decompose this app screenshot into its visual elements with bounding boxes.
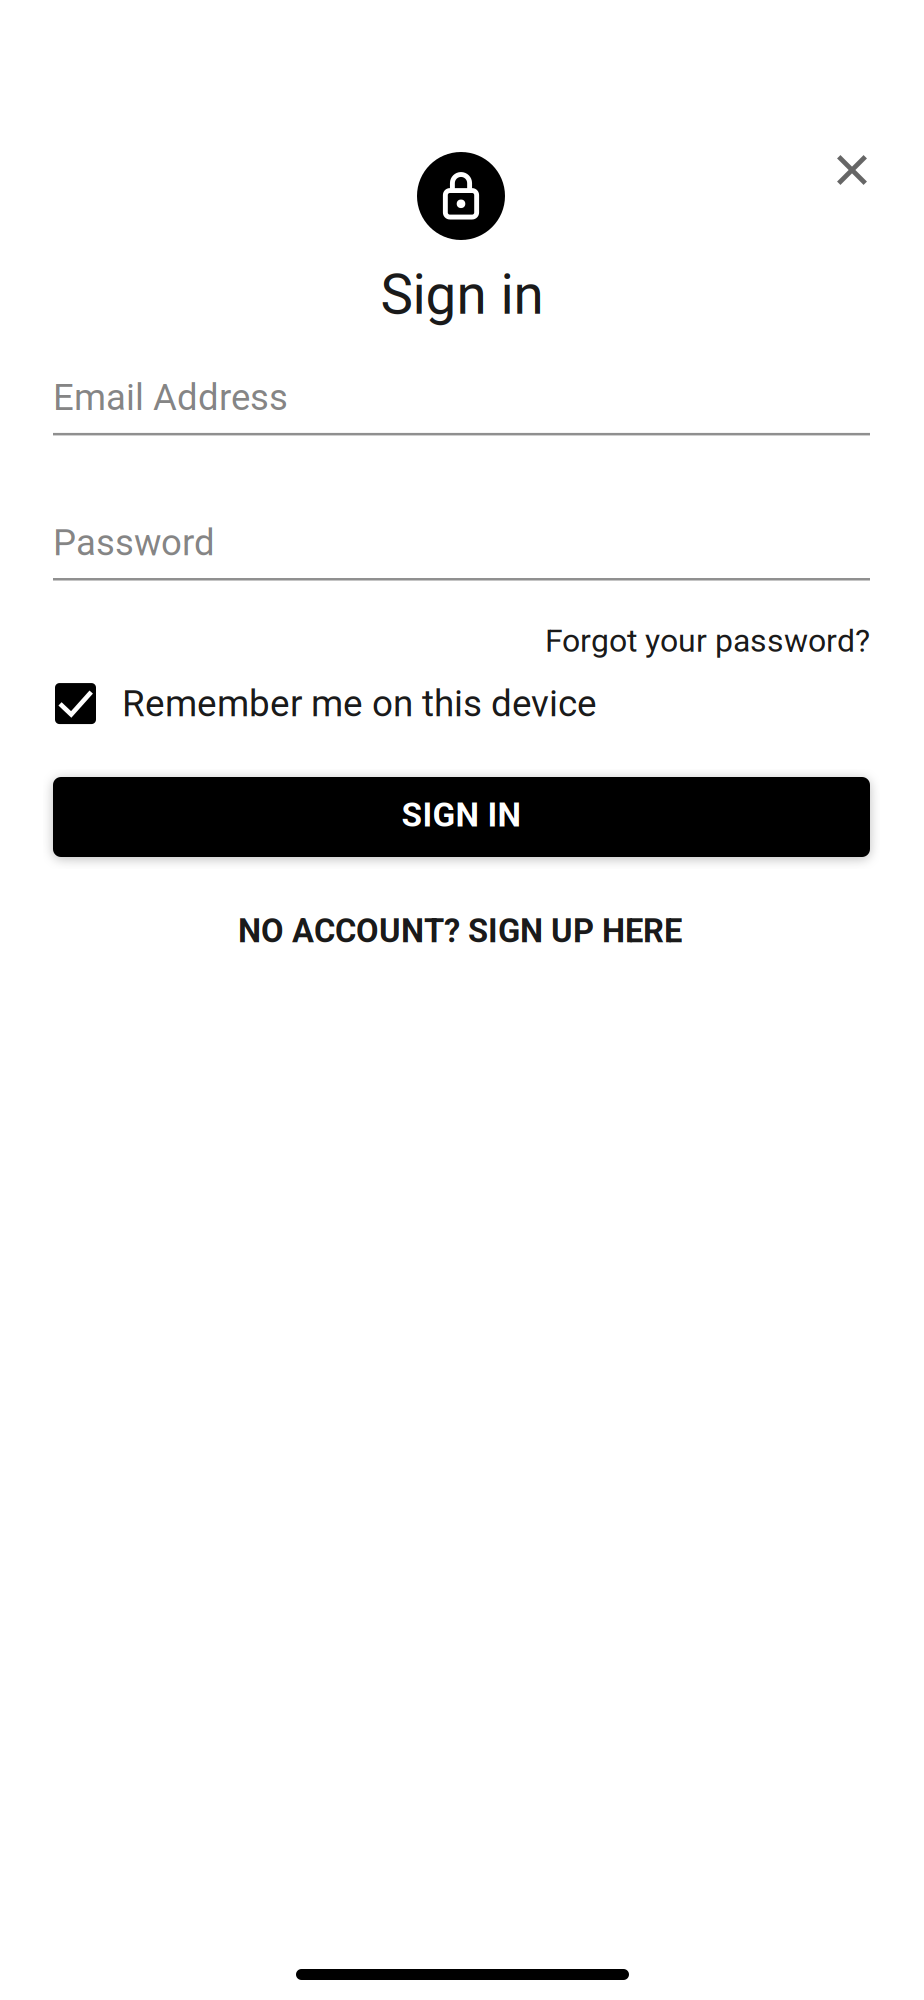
staticText: Sign in <box>380 263 543 327</box>
button[interactable]: Close <box>815 133 889 207</box>
staticText: SIGN IN <box>401 795 521 835</box>
staticText: NO ACCOUNT? SIGN UP HERE <box>238 912 682 950</box>
staticText: Forgot your password? <box>545 622 870 659</box>
button[interactable]: Email Address <box>53 376 870 435</box>
staticText: Password <box>53 521 215 564</box>
button[interactable]: SIGN IN <box>53 777 870 857</box>
button[interactable]: NO ACCOUNT? SIGN UP HERE <box>238 898 682 964</box>
staticText: Email Address <box>53 376 288 419</box>
button[interactable]: Forgot your password? <box>545 622 870 659</box>
staticText: Remember me on this device <box>122 682 597 725</box>
button[interactable]: Password <box>53 521 870 580</box>
button[interactable]: Remember me on this device <box>55 682 597 725</box>
